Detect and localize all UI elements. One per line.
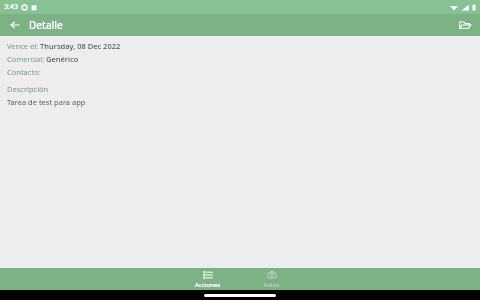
staticText: Tarea de test para app [7,97,86,107]
staticText: Vence el: Thursday, 08 Dec 2022 [7,41,121,51]
staticText: Detalle [29,18,63,32]
button[interactable]: Open folder [456,16,474,34]
staticText: 3:43 [4,2,18,12]
button[interactable]: Fotos [240,268,304,290]
button[interactable]: Acciones [176,268,240,290]
button[interactable]: Back [7,17,23,33]
staticText: Acciones [195,281,221,289]
staticText: Descripción [7,84,49,94]
staticText: Comercial: Genérico [7,54,79,64]
staticText: Contacto: [7,67,41,77]
staticText: Fotos [264,281,280,289]
